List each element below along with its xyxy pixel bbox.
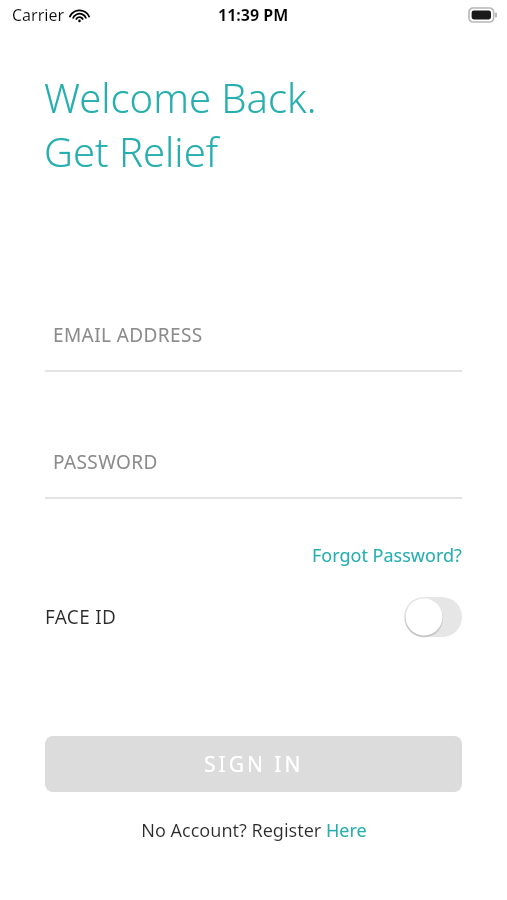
other: Battery full [469, 8, 497, 22]
button[interactable]: PASSWORD [45, 439, 462, 499]
staticText: Welcome Back. [44, 70, 317, 124]
button[interactable]: Forgot Password? [312, 543, 462, 568]
staticText: EMAIL ADDRESS [53, 322, 203, 348]
button[interactable]: Face ID toggle [404, 597, 462, 637]
button[interactable]: FACE ID [45, 592, 462, 642]
staticText: FACE ID [45, 604, 117, 630]
staticText: No Account? Register Here [141, 818, 367, 843]
staticText: Carrier [12, 4, 65, 26]
button[interactable]: No Account? Register Here [141, 818, 367, 843]
button[interactable]: EMAIL ADDRESS [45, 312, 462, 372]
staticText: Get Relief [44, 124, 219, 178]
button[interactable]: SIGN IN [45, 736, 462, 792]
staticText: 11:39 PM [218, 4, 289, 26]
staticText: SIGN IN [204, 750, 304, 779]
staticText: PASSWORD [53, 449, 158, 475]
staticText: Forgot Password? [312, 543, 462, 568]
